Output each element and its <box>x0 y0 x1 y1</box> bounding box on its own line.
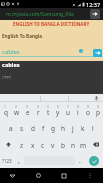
staticText: j <box>72 124 74 133</box>
staticText: x <box>31 141 35 150</box>
staticText: ?123 <box>2 158 12 164</box>
button[interactable]: Back <box>0 168 25 183</box>
button[interactable]: 7 <box>63 102 73 119</box>
staticText: b <box>61 141 65 150</box>
button[interactable]: d <box>27 119 38 136</box>
button[interactable]: Menu <box>77 168 103 183</box>
button[interactable]: 4 <box>33 102 43 119</box>
button[interactable]: Shift <box>0 136 16 153</box>
button[interactable]: l <box>88 119 98 136</box>
button[interactable]: 2 <box>11 102 22 119</box>
staticText: o <box>86 108 90 117</box>
staticText: 6 <box>57 104 60 109</box>
button[interactable]: z <box>16 136 27 153</box>
staticText: k <box>81 124 85 133</box>
button[interactable]: 3 <box>22 102 33 119</box>
button[interactable]: g <box>48 119 58 136</box>
staticText: v <box>51 141 55 150</box>
button[interactable]: j <box>68 119 78 136</box>
staticText: s <box>20 124 24 133</box>
staticText: f <box>42 124 45 133</box>
staticText: 5 <box>47 104 50 109</box>
staticText: q <box>4 108 8 117</box>
staticText: 3 <box>26 104 29 109</box>
button[interactable]: Voice input <box>94 96 99 101</box>
staticText: l <box>92 124 94 133</box>
staticText: w <box>14 108 20 117</box>
staticText: 12:37 <box>86 1 101 8</box>
staticText: 1 <box>4 104 7 109</box>
staticText: c <box>41 141 45 150</box>
button[interactable]: h <box>58 119 68 136</box>
button[interactable]: c <box>38 136 48 153</box>
button[interactable]: Backspace <box>88 136 103 153</box>
staticText: 7 <box>67 104 70 109</box>
button[interactable]: 8 <box>73 102 83 119</box>
staticText: m <box>80 141 87 150</box>
staticText: t <box>47 108 50 117</box>
button[interactable]: 1 <box>0 102 11 119</box>
button[interactable]: Search <box>93 49 102 57</box>
staticText: cables <box>2 61 20 69</box>
button[interactable]: ?123 <box>0 153 14 168</box>
staticText: i <box>77 108 79 117</box>
button[interactable]: Go <box>90 9 100 19</box>
staticText: e <box>26 108 30 117</box>
button[interactable]: 5 <box>43 102 53 119</box>
button[interactable]: k <box>78 119 88 136</box>
staticText: m.mytala.com/Samsung_Alla <box>6 11 74 18</box>
button[interactable]: m <box>78 136 88 153</box>
staticText: cables <box>2 48 20 56</box>
staticText: p <box>96 108 100 117</box>
button[interactable]: s <box>16 119 27 136</box>
staticText: 2 <box>15 104 18 109</box>
staticText: 8 <box>77 104 80 109</box>
button[interactable]: f <box>38 119 48 136</box>
staticText: 9 <box>87 104 90 109</box>
staticText: u <box>66 108 71 117</box>
staticText: z <box>20 141 24 150</box>
staticText: . <box>79 156 81 166</box>
staticText: 4 <box>37 104 40 109</box>
staticText: ENGLISH TO BANGLA DICTIONARY <box>13 21 90 27</box>
staticText: d <box>31 124 35 133</box>
button[interactable]: v <box>48 136 58 153</box>
staticText: 0 <box>97 104 100 109</box>
button[interactable]: 6 <box>53 102 63 119</box>
button[interactable]: , <box>14 153 24 168</box>
staticText: y <box>56 108 60 117</box>
staticText: g <box>51 124 55 133</box>
staticText: , <box>18 156 20 166</box>
button[interactable]: 0 <box>93 102 103 119</box>
staticText: a <box>9 124 13 133</box>
button[interactable]: Enter <box>89 156 99 166</box>
staticText: h <box>61 124 66 133</box>
button[interactable]: . <box>75 153 85 168</box>
staticText: n <box>71 141 76 150</box>
button[interactable]: 9 <box>83 102 93 119</box>
staticText: কেবল <box>2 75 11 80</box>
button[interactable]: Home <box>25 168 51 183</box>
button[interactable]: Info <box>79 49 83 53</box>
button[interactable]: n <box>68 136 78 153</box>
staticText: r <box>37 108 40 117</box>
staticText: English To Bangla <box>2 33 42 39</box>
button[interactable]: a <box>5 119 16 136</box>
button[interactable]: x <box>27 136 38 153</box>
button[interactable]: Recent apps <box>51 168 77 183</box>
button[interactable]: b <box>58 136 68 153</box>
